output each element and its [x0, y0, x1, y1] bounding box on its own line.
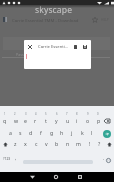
button[interactable]: Enter: [103, 130, 111, 138]
staticText: f: [40, 129, 42, 136]
staticText: o: [86, 117, 90, 124]
staticText: n: [66, 140, 70, 147]
button[interactable]: Close: [26, 43, 34, 51]
staticText: k: [81, 129, 84, 136]
staticText: y: [55, 117, 58, 124]
staticText: c: [35, 140, 38, 147]
staticText: !: [89, 140, 91, 147]
button[interactable]: Save: [81, 43, 89, 51]
staticText: .: [103, 155, 105, 161]
staticText: Carrie Essential TMM - Download: [12, 17, 79, 23]
staticText: g: [50, 129, 54, 136]
staticText: skyscape: [35, 4, 73, 16]
staticText: d: [29, 129, 33, 136]
button[interactable]: Backspace: [104, 119, 110, 123]
staticText: 8: [76, 112, 78, 116]
staticText: s: [19, 129, 22, 136]
button[interactable]: Back: [30, 175, 35, 179]
staticText: m: [76, 140, 81, 147]
staticText: e: [24, 117, 27, 124]
staticText: q: [3, 117, 7, 124]
staticText: ?123: [3, 156, 11, 161]
staticText: p: [97, 117, 101, 124]
staticText: r: [34, 117, 37, 124]
staticText: Pass: [16, 52, 24, 57]
button[interactable]: Info: [71, 43, 79, 51]
button[interactable]: Shift: [107, 142, 112, 147]
staticText: u: [66, 117, 70, 124]
staticText: 6: [56, 112, 58, 116]
staticText: 9: [87, 112, 89, 116]
staticText: Carrie Essenti...: [38, 44, 69, 50]
button[interactable]: Emoji: [106, 158, 111, 163]
staticText: j: [71, 129, 73, 136]
staticText: v: [45, 140, 48, 147]
staticText: h: [60, 129, 64, 136]
staticText: 3: [25, 112, 27, 116]
staticText: l: [91, 129, 93, 136]
staticText: 7: [66, 112, 68, 116]
staticText: x: [24, 140, 27, 147]
staticText: 2: [14, 112, 16, 116]
staticText: 5: [45, 112, 47, 116]
staticText: b: [55, 140, 59, 147]
button[interactable]: Recents: [78, 175, 82, 179]
staticText: 4: [35, 112, 37, 116]
staticText: ?: [98, 140, 101, 147]
staticText: ,: [15, 155, 17, 161]
button[interactable]: Shift: [3, 142, 8, 147]
staticText: z: [14, 140, 17, 147]
staticText: i: [76, 117, 78, 124]
staticText: t: [45, 117, 47, 124]
staticText: 0: [97, 112, 99, 116]
staticText: a: [9, 129, 12, 136]
staticText: 1: [4, 112, 6, 116]
button[interactable]: Home: [54, 175, 58, 179]
staticText: w: [14, 117, 19, 124]
